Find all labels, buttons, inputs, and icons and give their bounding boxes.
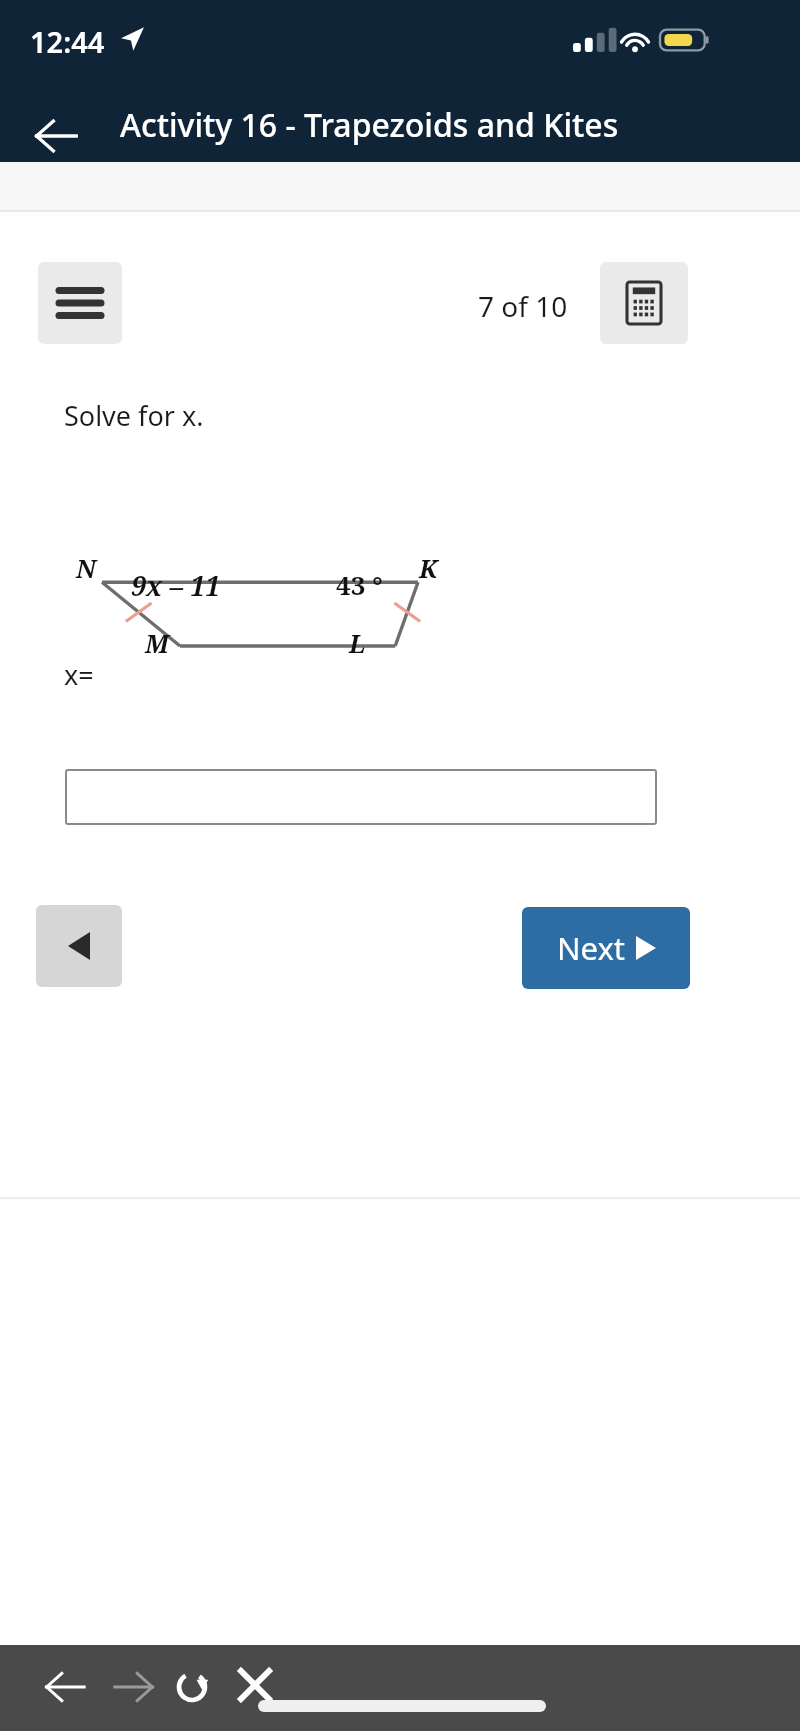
staticText: x=: [64, 656, 94, 693]
staticText: 7 of 10: [478, 287, 568, 325]
button[interactable]: Browser forward: [105, 1658, 163, 1716]
button[interactable]: Next: [522, 907, 690, 989]
button[interactable]: Close: [226, 1656, 284, 1714]
staticText: K: [419, 551, 438, 585]
staticText: L: [349, 626, 366, 660]
staticText: 12:44: [30, 22, 105, 61]
staticText: Solve for x.: [64, 397, 204, 434]
staticText: 9x – 11: [131, 567, 221, 604]
button[interactable]: Browser back: [36, 1658, 94, 1716]
staticText: Next: [557, 927, 626, 969]
staticText: M: [145, 626, 169, 660]
staticText: N: [76, 551, 96, 585]
button[interactable]: Answer input: [65, 769, 657, 825]
button[interactable]: Reload: [163, 1658, 221, 1716]
button[interactable]: Back: [24, 104, 88, 168]
button[interactable]: Calculator: [600, 262, 688, 344]
staticText: Activity 16 - Trapezoids and Kites: [120, 103, 619, 147]
button[interactable]: Previous: [36, 905, 122, 987]
button[interactable]: Menu: [38, 262, 122, 344]
staticText: 43 °: [336, 567, 383, 602]
